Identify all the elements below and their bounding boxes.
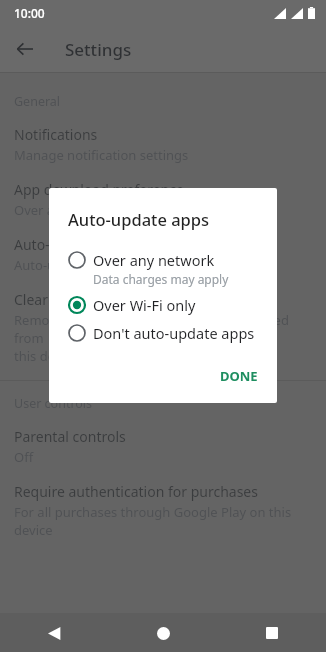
staticText: DONE	[220, 367, 258, 385]
staticText: Auto-update apps	[14, 235, 132, 254]
button[interactable]: DONE	[211, 361, 267, 391]
staticText: Data charges may apply	[93, 271, 229, 287]
staticText: Manage notification settings	[14, 146, 189, 164]
staticText: Notifications	[14, 125, 98, 144]
button[interactable]: Notifications	[0, 114, 326, 169]
staticText: App download preference	[14, 180, 184, 199]
staticText: Over any network	[14, 201, 123, 219]
staticText: 10:00	[14, 5, 45, 21]
button[interactable]: Back	[9, 33, 41, 65]
staticText: General	[14, 93, 61, 110]
button[interactable]: Auto-update apps	[0, 224, 326, 279]
button[interactable]: Recent apps	[255, 616, 289, 650]
staticText: Off	[14, 448, 34, 466]
staticText: For all purchases through Google Play on…	[14, 503, 292, 539]
staticText: Settings	[65, 38, 132, 61]
button[interactable]: Home	[146, 616, 180, 650]
staticText: User controls	[14, 395, 93, 412]
staticText: Remove all the searches you have perform…	[14, 311, 312, 365]
button[interactable]: Over Wi-Fi only	[49, 291, 277, 319]
staticText: Over any network	[93, 250, 215, 270]
button[interactable]: Clear local search history	[0, 279, 326, 370]
staticText: Auto-update apps over Wi-Fi only	[14, 256, 216, 274]
staticText: Over Wi-Fi only	[93, 295, 196, 315]
button[interactable]: App download preference	[0, 169, 326, 224]
staticText: Auto-update apps	[68, 208, 210, 230]
staticText: Clear local search history	[14, 290, 178, 309]
button[interactable]: Parental controls	[0, 416, 326, 471]
button[interactable]: Require authentication for purchases	[0, 471, 326, 544]
button[interactable]: Don't auto-update apps	[49, 319, 277, 347]
button[interactable]: Over any network	[49, 246, 277, 291]
staticText: Don't auto-update apps	[93, 323, 255, 343]
staticText: Parental controls	[14, 427, 126, 446]
button[interactable]: Back	[37, 616, 71, 650]
staticText: Require authentication for purchases	[14, 482, 258, 501]
